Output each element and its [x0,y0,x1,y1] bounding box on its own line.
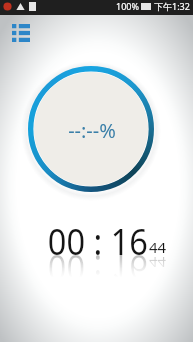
staticText: 100% [116,0,139,12]
staticText: 00 : 16 [48,215,148,265]
button[interactable]: Menu [8,20,34,46]
staticText: 44 [149,253,167,273]
staticText: 44 [149,237,167,257]
staticText: 00 : 16 [48,245,148,295]
staticText: --:--% [68,117,116,144]
staticText: 下午1:32 [154,0,190,12]
